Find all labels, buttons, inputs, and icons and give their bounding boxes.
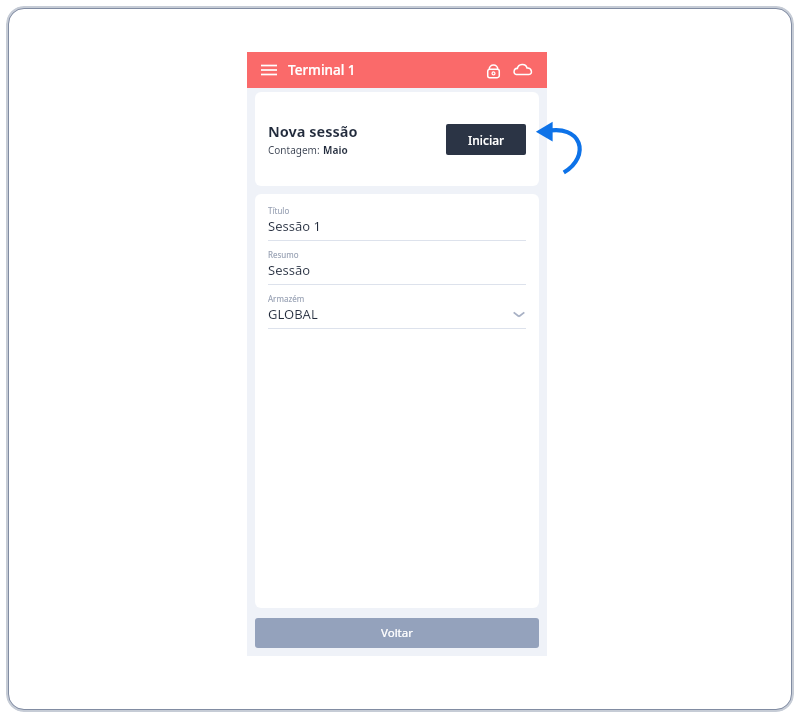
- button[interactable]: Armazém: [268, 293, 526, 337]
- staticText: Armazém: [268, 293, 305, 304]
- staticText: Iniciar: [468, 132, 505, 148]
- staticText: Sessão: [268, 261, 526, 279]
- staticText: Título: [268, 205, 290, 216]
- button[interactable]: Voltar: [255, 618, 539, 648]
- button[interactable]: Menu: [258, 59, 280, 81]
- staticText: Maio: [323, 143, 348, 157]
- staticText: Contagem:: [268, 143, 323, 157]
- button[interactable]: Nova sessão: [255, 92, 539, 186]
- button[interactable]: Título: [268, 205, 526, 249]
- staticText: Nova sessão: [268, 121, 358, 141]
- staticText: Voltar: [381, 625, 413, 641]
- staticText: Resumo: [268, 249, 299, 260]
- staticText: Sessão 1: [268, 217, 526, 235]
- staticText: Terminal 1: [288, 61, 356, 79]
- button[interactable]: Cloud sync: [510, 57, 536, 83]
- button[interactable]: Resumo: [268, 249, 526, 293]
- button[interactable]: Iniciar: [446, 124, 526, 155]
- staticText: GLOBAL: [268, 305, 512, 323]
- button[interactable]: Lock: [480, 57, 506, 83]
